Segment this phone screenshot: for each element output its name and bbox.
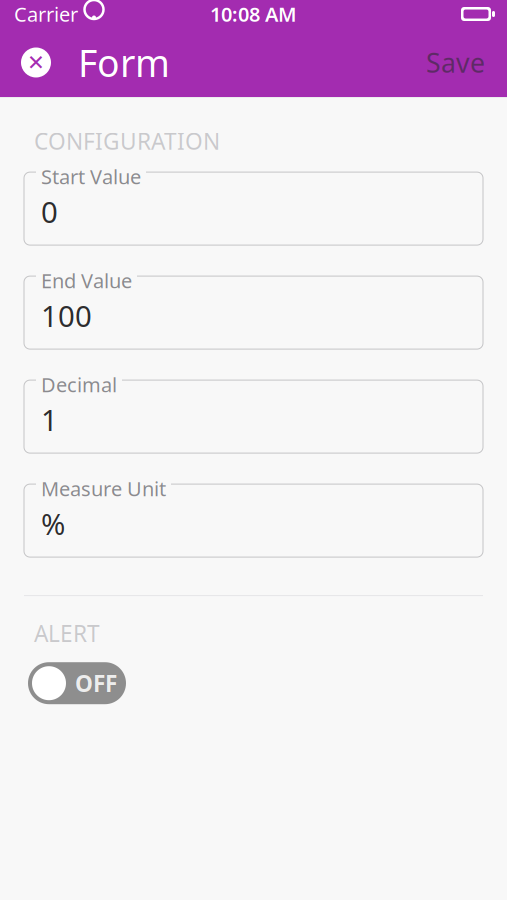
staticText: ALERT: [34, 618, 100, 648]
staticText: 100: [41, 296, 92, 335]
staticText: Measure Unit: [41, 475, 166, 502]
staticText: Start Value: [41, 163, 141, 190]
button[interactable]: Close: [14, 40, 58, 84]
staticText: OFF: [75, 668, 117, 698]
staticText: End Value: [41, 267, 132, 294]
staticText: Save: [426, 45, 485, 80]
staticText: 1: [41, 400, 58, 439]
staticText: 0: [41, 192, 58, 231]
staticText: Decimal: [41, 371, 117, 398]
staticText: Form: [78, 38, 170, 87]
staticText: %: [41, 504, 65, 543]
staticText: 10:08 AM: [210, 1, 297, 27]
button[interactable]: Alert off: [28, 662, 126, 704]
button[interactable]: Save: [412, 35, 499, 90]
staticText: CONFIGURATION: [34, 126, 220, 156]
staticText: ✕: [27, 50, 45, 75]
staticText: Carrier: [14, 1, 78, 27]
